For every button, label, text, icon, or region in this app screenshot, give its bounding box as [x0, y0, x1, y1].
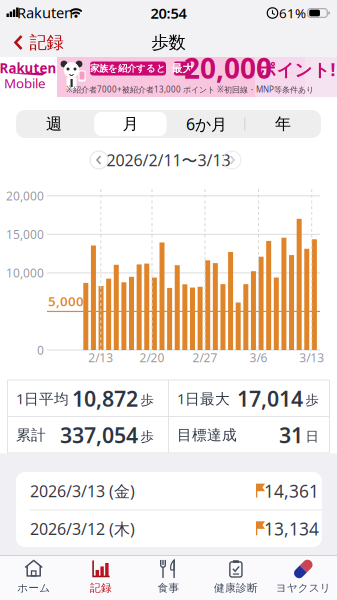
button[interactable]: Rakuten Mobile 広告	[0, 57, 337, 97]
staticText: 3/13	[299, 349, 324, 365]
staticText: ポイント!	[258, 58, 335, 81]
staticText: ※紹介者7000+被紹介者13,000 ポイント ※初回線・MNP等条件あり	[66, 84, 314, 95]
staticText: 0	[37, 342, 44, 358]
staticText: 17,014	[237, 384, 303, 413]
staticText: 5,000	[48, 292, 84, 310]
staticText: 日	[305, 428, 318, 445]
staticText: 10,872	[72, 384, 138, 413]
staticText: 年	[275, 114, 291, 134]
staticText: 1日平均	[16, 389, 69, 408]
staticText: 13,134	[264, 517, 319, 540]
staticText: 2/27	[192, 349, 217, 365]
staticText: 目標達成	[177, 426, 237, 444]
staticText: 31	[279, 421, 303, 449]
staticText: 14,361	[264, 479, 319, 502]
staticText: Mobile	[4, 74, 46, 92]
staticText: 2026/2/11〜3/13	[106, 149, 230, 171]
staticText: 3/6	[249, 349, 267, 365]
button[interactable]: 次の期間	[222, 150, 241, 169]
staticText: 2/13	[88, 349, 113, 365]
button[interactable]: 週	[16, 110, 92, 138]
staticText: ヨヤクスリ	[276, 581, 331, 594]
staticText: 歩数	[151, 32, 185, 53]
staticText: 10,000	[6, 265, 44, 281]
staticText: Rakuten	[17, 3, 73, 22]
staticText: 20,000	[184, 49, 272, 87]
button[interactable]: 前の期間	[89, 150, 108, 169]
staticText: 1日最大	[177, 389, 230, 408]
staticText: Rakuten	[0, 59, 56, 77]
button[interactable]: 健康診断	[203, 556, 269, 597]
staticText: 食事	[157, 581, 179, 594]
staticText: 健康診断	[214, 581, 258, 594]
staticText: 歩	[140, 428, 153, 445]
staticText: 月	[122, 114, 138, 134]
button[interactable]: 記録に戻る	[4, 29, 74, 55]
staticText: 最大	[171, 62, 193, 75]
staticText: 20:54	[150, 3, 186, 23]
staticText: 週	[46, 114, 62, 134]
button[interactable]: 2026/3/13 (金)	[16, 472, 322, 509]
staticText: 家族を紹介すると	[90, 63, 166, 74]
button[interactable]: 月	[92, 110, 168, 138]
staticText: 61%	[279, 4, 306, 22]
button[interactable]: 記録	[68, 556, 134, 597]
button[interactable]: ヨヤクスリ	[270, 556, 336, 597]
staticText: 2026/3/12 (木)	[30, 518, 135, 539]
button[interactable]: 年	[245, 110, 321, 138]
staticText: 337,054	[60, 421, 138, 449]
staticText: 記録	[90, 581, 112, 594]
staticText: 15,000	[6, 226, 44, 242]
button[interactable]: 2026/3/12 (木)	[16, 510, 322, 547]
staticText: 記録	[29, 32, 63, 53]
staticText: 歩	[305, 392, 318, 408]
staticText: 2/20	[139, 349, 164, 365]
staticText: 2026/3/13 (金)	[30, 480, 135, 502]
staticText: 歩	[140, 392, 153, 408]
staticText: ホーム	[17, 581, 50, 594]
staticText: 6か月	[186, 113, 227, 135]
button[interactable]: 6か月	[169, 110, 245, 138]
staticText: 累計	[16, 426, 46, 444]
button[interactable]: 食事	[135, 556, 201, 597]
staticText: 20,000	[6, 188, 44, 204]
button[interactable]: ホーム	[1, 556, 67, 597]
